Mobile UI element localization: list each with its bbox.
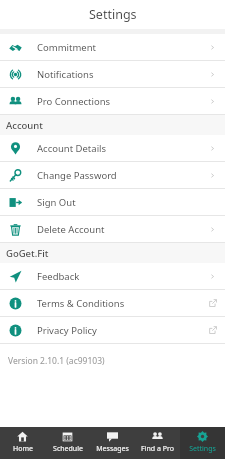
button[interactable]: Commitment [0,34,225,60]
button[interactable]: Messages [90,427,135,459]
staticText: Terms & Conditions [37,297,125,310]
staticText: Account Details [37,142,107,155]
button[interactable]: Privacy Policy [0,317,225,343]
button[interactable]: Delete Account [0,216,225,242]
staticText: Settings [189,444,216,454]
staticText: Change Password [37,169,117,182]
button[interactable]: Sign Out [0,189,225,215]
staticText: Notifications [37,68,94,81]
staticText: Find a Pro [141,444,174,454]
button[interactable]: Account Details [0,135,225,161]
button[interactable]: Schedule [45,427,90,459]
button[interactable]: Pro Connections [0,88,225,114]
button[interactable]: Settings [180,427,225,459]
staticText: Commitment [37,41,96,54]
button[interactable]: Notifications [0,61,225,87]
staticText: Messages [96,444,129,454]
staticText: Version 2.10.1 (ac99103) [8,355,105,367]
staticText: Home [13,444,33,454]
button[interactable]: Feedback [0,263,225,289]
button[interactable]: Change Password [0,162,225,188]
button[interactable]: Terms & Conditions [0,290,225,316]
staticText: GoGet.Fit [6,247,49,260]
button[interactable]: Home [0,427,45,459]
staticText: Settings [89,6,137,23]
staticText: Pro Connections [37,95,111,108]
button[interactable]: Find a Pro [135,427,180,459]
staticText: Schedule [53,444,83,454]
staticText: Account [6,119,43,132]
staticText: Feedback [37,270,80,283]
staticText: Delete Account [37,223,105,236]
staticText: Sign Out [37,196,76,209]
staticText: Privacy Policy [37,324,97,337]
